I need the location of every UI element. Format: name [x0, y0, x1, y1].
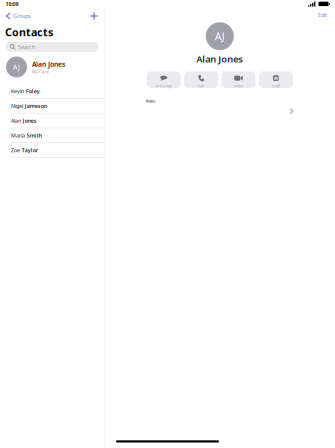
button[interactable]: Kevin [0, 84, 104, 99]
staticText: AJ [13, 63, 20, 71]
staticText: mail [272, 83, 280, 88]
button[interactable]: mail [259, 72, 293, 88]
staticText: Kevin [11, 87, 24, 95]
button[interactable]: Add contact [90, 9, 104, 23]
staticText: AJ [215, 29, 225, 43]
button[interactable]: Maria [0, 128, 104, 143]
button[interactable]: Groups [0, 9, 31, 23]
staticText: Groups [13, 12, 31, 20]
staticText: Taylor [22, 146, 38, 154]
button[interactable]: Alan [0, 113, 104, 128]
button[interactable]: Notes [105, 88, 335, 114]
staticText: Jameson [25, 102, 47, 109]
staticText: Jones [23, 117, 37, 124]
button[interactable]: Edit [318, 8, 335, 22]
staticText: My Card [32, 69, 48, 74]
staticText: Foley [26, 87, 40, 95]
staticText: Maria [11, 132, 25, 139]
staticText: 10:09 [5, 0, 18, 8]
staticText: call [198, 83, 204, 88]
staticText: Zoe [11, 146, 20, 154]
staticText: Alan Jones [32, 60, 65, 69]
button[interactable]: message [147, 72, 181, 88]
button[interactable]: Search [5, 42, 98, 52]
staticText: Contacts [5, 25, 53, 39]
staticText: Edit [318, 11, 327, 19]
staticText: Search [18, 43, 35, 51]
staticText: message [156, 83, 172, 88]
staticText: Nigel [11, 102, 23, 109]
staticText: Notes [146, 98, 156, 103]
staticText: Alan Jones [196, 53, 243, 65]
staticText: Smith [27, 132, 42, 139]
button[interactable]: video [222, 72, 255, 88]
staticText: video [234, 83, 243, 88]
button[interactable]: Zoe [0, 143, 104, 158]
staticText: Alan [11, 117, 21, 124]
button[interactable]: Nigel [0, 99, 104, 114]
button[interactable]: call [184, 72, 218, 88]
button[interactable]: AJ [0, 52, 104, 84]
